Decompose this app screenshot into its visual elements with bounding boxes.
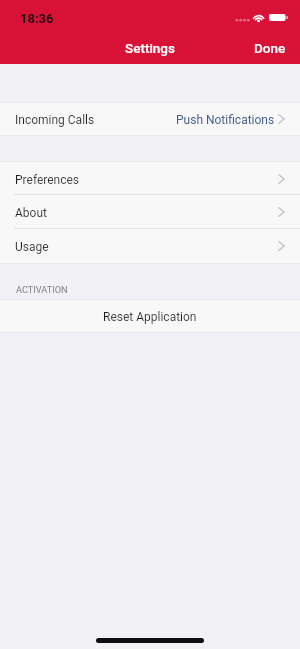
staticText: Preferences <box>15 173 80 187</box>
other: Signal, Wi-Fi and battery status <box>240 0 300 32</box>
staticText: Reset Application <box>103 310 197 324</box>
button[interactable]: Incoming Calls <box>0 103 300 135</box>
button[interactable]: Reset Application <box>0 300 300 332</box>
staticText: About <box>15 206 47 220</box>
staticText: Settings <box>125 40 175 56</box>
staticText: Usage <box>15 240 49 254</box>
button[interactable]: Usage <box>0 229 300 263</box>
staticText: ACTIVATION <box>16 284 68 295</box>
staticText: Done <box>254 40 286 56</box>
button[interactable]: About <box>0 195 300 229</box>
staticText: 18:36 <box>20 11 54 26</box>
button[interactable]: Preferences <box>0 162 300 195</box>
staticText: Push Notifications <box>176 113 275 127</box>
staticText: Incoming Calls <box>15 113 95 127</box>
button[interactable]: Done <box>239 33 300 63</box>
